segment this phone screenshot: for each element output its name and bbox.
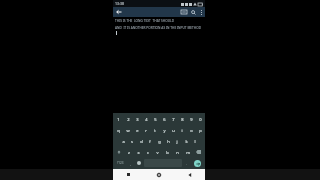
- button[interactable]: Search: [189, 7, 197, 17]
- staticText: j: [176, 139, 178, 144]
- button[interactable]: p: [196, 125, 204, 135]
- button[interactable]: 0: [196, 114, 204, 124]
- button[interactable]: 4: [142, 114, 150, 124]
- staticText: ?123: [117, 161, 124, 165]
- button[interactable]: Symbols: [114, 158, 126, 168]
- button[interactable]: 6: [160, 114, 168, 124]
- button[interactable]: e: [133, 125, 141, 135]
- button[interactable]: o: [187, 125, 195, 135]
- button[interactable]: 5: [151, 114, 159, 124]
- button[interactable]: d: [137, 136, 145, 146]
- staticText: b: [166, 150, 169, 155]
- button[interactable]: 8: [178, 114, 186, 124]
- staticText: a: [122, 139, 125, 144]
- staticText: v: [156, 150, 159, 155]
- staticText: w: [126, 128, 130, 133]
- button[interactable]: g: [155, 136, 163, 146]
- staticText: ,: [130, 161, 131, 166]
- staticText: x: [137, 150, 140, 155]
- staticText: THIS IS THE LONG TEXT THAT SHOULD: [115, 19, 175, 23]
- staticText: 4: [145, 117, 148, 122]
- staticText: 8: [181, 117, 184, 122]
- button[interactable]: c: [143, 147, 152, 157]
- staticText: z: [128, 150, 130, 155]
- button[interactable]: k: [182, 136, 190, 146]
- staticText: .: [186, 161, 187, 166]
- staticText: AND IT IS ANOTHER PORTION AS IN THE INPU…: [115, 26, 202, 30]
- staticText: c: [147, 150, 149, 155]
- button[interactable]: x: [134, 147, 142, 157]
- staticText: l: [194, 139, 196, 144]
- button[interactable]: Back: [113, 169, 143, 180]
- button[interactable]: Run: [179, 7, 189, 17]
- button[interactable]: Voice input: [135, 158, 143, 168]
- button[interactable]: 9: [187, 114, 195, 124]
- button[interactable]: y: [160, 125, 168, 135]
- button[interactable]: 7: [169, 114, 177, 124]
- button[interactable]: 1: [114, 114, 123, 124]
- button[interactable]: u: [169, 125, 177, 135]
- staticText: 1: [117, 117, 120, 122]
- staticText: n: [176, 150, 179, 155]
- staticText: u: [172, 128, 175, 133]
- staticText: s: [131, 139, 133, 144]
- button[interactable]: w: [124, 125, 132, 135]
- button[interactable]: Recent apps: [174, 169, 205, 180]
- button[interactable]: Back: [113, 7, 125, 17]
- button[interactable]: h: [164, 136, 172, 146]
- button[interactable]: Backspace: [193, 147, 204, 157]
- staticText: q: [117, 128, 120, 133]
- button[interactable]: s: [128, 136, 136, 146]
- staticText: i: [181, 128, 183, 133]
- staticText: 9: [190, 117, 193, 122]
- staticText: g: [158, 139, 161, 144]
- button[interactable]: b: [163, 147, 172, 157]
- staticText: e: [136, 128, 139, 133]
- staticText: f: [149, 139, 151, 144]
- button[interactable]: f: [146, 136, 154, 146]
- button[interactable]: Comma: [127, 158, 134, 168]
- button[interactable]: Shift: [114, 147, 124, 157]
- staticText: k: [185, 139, 188, 144]
- staticText: r: [145, 128, 147, 133]
- staticText: o: [190, 128, 193, 133]
- staticText: 7: [172, 117, 175, 122]
- button[interactable]: m: [183, 147, 192, 157]
- button[interactable]: v: [153, 147, 162, 157]
- button[interactable]: r: [142, 125, 150, 135]
- button[interactable]: Enter: [194, 160, 201, 167]
- button[interactable]: n: [173, 147, 182, 157]
- button[interactable]: 3: [133, 114, 141, 124]
- staticText: 2: [127, 117, 130, 122]
- staticText: d: [140, 139, 143, 144]
- button[interactable]: i: [178, 125, 186, 135]
- button[interactable]: More options: [197, 7, 205, 17]
- button[interactable]: j: [173, 136, 181, 146]
- staticText: 6: [163, 117, 166, 122]
- staticText: y: [163, 128, 166, 133]
- button[interactable]: 2: [124, 114, 132, 124]
- staticText: h: [167, 139, 170, 144]
- staticText: t: [154, 128, 156, 133]
- button[interactable]: l: [191, 136, 199, 146]
- staticText: 13:38: [115, 1, 124, 6]
- button[interactable]: Period: [183, 158, 190, 168]
- button[interactable]: t: [151, 125, 159, 135]
- staticText: m: [186, 150, 190, 155]
- button[interactable]: q: [114, 125, 123, 135]
- staticText: 3: [136, 117, 139, 122]
- button[interactable]: a: [119, 136, 127, 146]
- staticText: 5: [154, 117, 157, 122]
- button[interactable]: Home: [143, 169, 174, 180]
- button[interactable]: z: [125, 147, 133, 157]
- staticText: p: [199, 128, 202, 133]
- staticText: 0: [199, 117, 202, 122]
